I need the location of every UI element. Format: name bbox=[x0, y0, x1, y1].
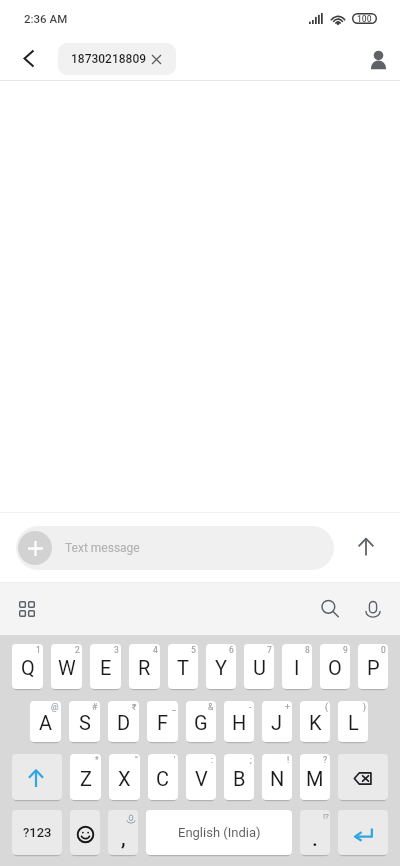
staticText: ₹ bbox=[132, 702, 137, 712]
staticText: T bbox=[177, 656, 189, 679]
button[interactable]: Emoji bbox=[70, 810, 100, 855]
button[interactable]: @ bbox=[30, 701, 61, 742]
staticText: ?123 bbox=[23, 825, 52, 840]
button[interactable]: * bbox=[70, 754, 101, 800]
staticText: ' bbox=[174, 755, 176, 765]
button[interactable]: 5 bbox=[168, 644, 198, 689]
button[interactable]: : bbox=[186, 754, 216, 800]
staticText: W bbox=[58, 656, 76, 679]
button[interactable]: 9 bbox=[320, 644, 350, 689]
staticText: - bbox=[249, 702, 252, 712]
button[interactable]: Contact details bbox=[360, 41, 396, 77]
staticText: ( bbox=[325, 702, 328, 712]
staticText: 4 bbox=[153, 645, 158, 655]
staticText: ; bbox=[250, 755, 252, 765]
button[interactable]: ) bbox=[338, 701, 368, 742]
button[interactable]: !? bbox=[300, 810, 330, 855]
button[interactable]: 2 bbox=[51, 644, 82, 689]
staticText: 8 bbox=[305, 645, 310, 655]
staticText: Z bbox=[80, 767, 92, 790]
staticText: @ bbox=[51, 702, 59, 712]
staticText: E bbox=[100, 656, 112, 679]
button[interactable]: 6 bbox=[206, 644, 236, 689]
staticText: _ bbox=[172, 702, 176, 712]
staticText: 6 bbox=[229, 645, 234, 655]
staticText: M bbox=[306, 767, 324, 790]
button[interactable]: ? bbox=[300, 754, 330, 800]
staticText: S bbox=[79, 711, 91, 734]
staticText: 18730218809 bbox=[71, 52, 147, 66]
staticText: Text message bbox=[65, 541, 140, 555]
button[interactable]: ! bbox=[262, 754, 292, 800]
button[interactable]: Voice input bbox=[355, 591, 391, 627]
staticText: G bbox=[194, 711, 208, 734]
button[interactable]: , bbox=[108, 810, 138, 855]
staticText: B bbox=[233, 767, 246, 790]
staticText: . bbox=[312, 827, 318, 852]
staticText: U bbox=[253, 656, 266, 679]
button[interactable]: _ bbox=[147, 701, 178, 742]
staticText: + bbox=[285, 702, 290, 712]
button[interactable]: Backspace bbox=[338, 754, 388, 800]
staticText: # bbox=[92, 702, 98, 712]
staticText: O bbox=[328, 656, 342, 679]
staticText: 5 bbox=[191, 645, 196, 655]
staticText: H bbox=[232, 711, 247, 734]
button[interactable]: 0 bbox=[358, 644, 388, 689]
staticText: " bbox=[135, 755, 138, 765]
button[interactable]: ?123 bbox=[12, 810, 62, 855]
staticText: ! bbox=[287, 755, 290, 765]
button[interactable]: Text message bbox=[16, 526, 334, 570]
staticText: K bbox=[309, 711, 322, 734]
staticText: 7 bbox=[267, 645, 272, 655]
staticText: N bbox=[270, 767, 285, 790]
button[interactable]: 7 bbox=[244, 644, 274, 689]
button[interactable]: ₹ bbox=[108, 701, 139, 742]
staticText: L bbox=[348, 711, 359, 734]
button[interactable]: & bbox=[186, 701, 216, 742]
staticText: R bbox=[138, 656, 151, 679]
button[interactable]: Search bbox=[312, 591, 348, 627]
button[interactable]: 3 bbox=[90, 644, 121, 689]
button[interactable]: - bbox=[224, 701, 254, 742]
staticText: 3 bbox=[114, 645, 119, 655]
button[interactable]: Send bbox=[348, 530, 384, 566]
button[interactable]: 18730218809 bbox=[58, 43, 176, 75]
staticText: ) bbox=[363, 702, 366, 712]
button[interactable]: Back bbox=[11, 39, 47, 75]
button[interactable]: ' bbox=[148, 754, 178, 800]
staticText: !? bbox=[323, 812, 329, 821]
staticText: English (India) bbox=[178, 825, 261, 840]
staticText: 1 bbox=[36, 645, 41, 655]
staticText: D bbox=[117, 711, 131, 734]
button[interactable]: 1 bbox=[12, 644, 43, 689]
button[interactable]: " bbox=[109, 754, 140, 800]
staticText: , bbox=[121, 826, 126, 851]
staticText: : bbox=[211, 755, 214, 765]
staticText: 0 bbox=[381, 645, 386, 655]
button[interactable]: Keyboard options bbox=[9, 591, 45, 627]
staticText: J bbox=[271, 711, 283, 734]
button[interactable]: + bbox=[262, 701, 292, 742]
staticText: 2:36 AM bbox=[24, 12, 68, 25]
staticText: V bbox=[195, 767, 208, 790]
staticText: C bbox=[156, 767, 170, 790]
button[interactable]: Shift bbox=[12, 754, 62, 800]
staticText: A bbox=[39, 711, 53, 734]
button[interactable]: Enter bbox=[338, 810, 388, 855]
staticText: F bbox=[157, 711, 169, 734]
button[interactable]: 8 bbox=[282, 644, 312, 689]
button[interactable]: ( bbox=[300, 701, 330, 742]
staticText: I bbox=[294, 656, 300, 679]
staticText: 2 bbox=[75, 645, 80, 655]
button[interactable]: English (India) bbox=[146, 810, 292, 855]
button[interactable]: # bbox=[69, 701, 100, 742]
staticText: 100 bbox=[357, 14, 372, 24]
button[interactable]: 4 bbox=[129, 644, 160, 689]
staticText: * bbox=[95, 755, 99, 765]
button[interactable]: ; bbox=[224, 754, 254, 800]
staticText: 9 bbox=[343, 645, 348, 655]
staticText: Y bbox=[215, 656, 228, 679]
staticText: & bbox=[208, 702, 214, 712]
staticText: Q bbox=[21, 656, 35, 679]
